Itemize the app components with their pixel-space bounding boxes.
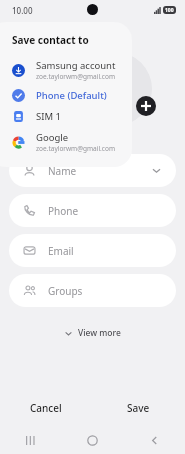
staticText: Samsung account [36,59,116,72]
button[interactable]: Groups [9,274,176,307]
button[interactable]: Contact photo [78,52,152,126]
button[interactable]: Add contact photo [136,96,156,116]
staticText: zoe.taylorwm@gmail.com [36,144,115,153]
staticText: Groups [48,284,83,298]
button[interactable]: Phone (Default) [0,85,124,106]
button[interactable]: Cancel [0,390,92,426]
staticText: zoe.taylorwm@gmail.com [36,72,115,81]
staticText: Name [48,164,77,178]
staticText: Save contact to [12,33,89,47]
staticText: 10.00 [12,5,33,16]
button[interactable]: Phone [9,194,176,227]
button[interactable]: Google [0,127,124,157]
staticText: Phone (Default) [36,89,107,102]
button[interactable]: Name [9,154,176,187]
button[interactable]: Add photo [66,96,86,116]
button[interactable]: Samsung account [0,55,124,85]
button[interactable]: SIM 1 [0,106,124,127]
staticText: SIM 1 [36,110,61,123]
button[interactable]: Back [123,426,185,454]
staticText: Email [48,244,74,258]
staticText: 100 [165,7,174,14]
staticText: Save [127,401,150,415]
staticText: View more [78,327,121,339]
button[interactable]: Home [61,426,123,454]
staticText: Phone [48,204,79,218]
button[interactable]: View more [56,323,129,343]
button[interactable]: Recent apps [0,426,61,454]
button[interactable]: Email [9,234,176,267]
staticText: Cancel [30,401,62,415]
button[interactable]: Save [92,390,185,426]
staticText: Google [36,131,69,144]
